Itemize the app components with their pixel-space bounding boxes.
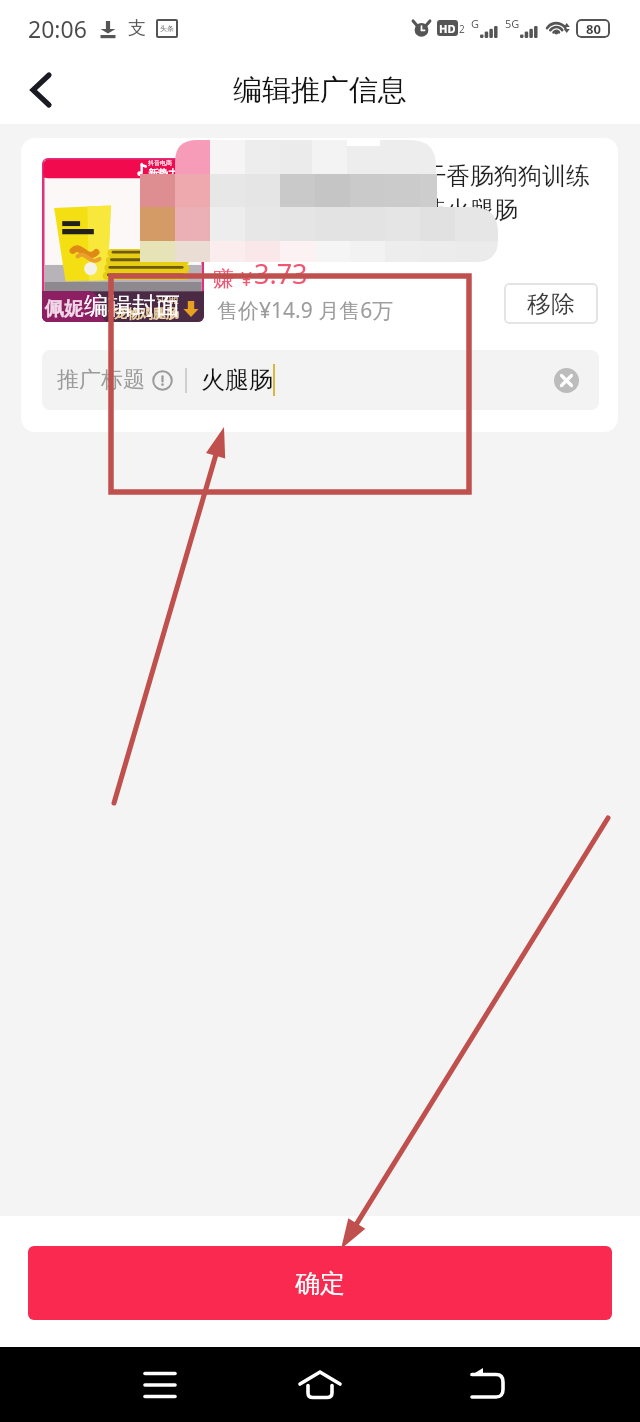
staticText: 2 (459, 22, 465, 36)
staticText: 火腿肠 (201, 365, 273, 395)
button[interactable]: Recent apps (130, 1355, 190, 1415)
staticText: 抖音电商 (148, 159, 172, 167)
staticText: 移除 (527, 289, 575, 319)
staticText: 支 (128, 17, 146, 40)
button[interactable]: Clear text (546, 360, 586, 400)
staticText: 新势力品牌 (148, 167, 198, 180)
button[interactable]: 抖音电商 (42, 158, 204, 322)
staticText: 3.73 (254, 255, 308, 292)
staticText: 宠物零食狗狗磨牙肉干香肠狗狗训练零食鸡肉味狗粮奖励装火腿肠 (206, 161, 605, 226)
staticText: ¥ (241, 266, 252, 292)
staticText: 售价¥14.9 月售6万 (217, 296, 394, 325)
button[interactable]: 推广标题 (42, 350, 599, 410)
staticText: 宠物鸡腿肠 (114, 305, 179, 321)
staticText: 确定 (295, 1268, 345, 1299)
staticText: G (471, 16, 480, 31)
staticText: 20:06 (28, 13, 87, 44)
staticText: 编辑推广信息 (233, 72, 407, 109)
button[interactable]: Back (457, 1355, 517, 1415)
staticText: HD (439, 21, 456, 36)
staticText: 80 (586, 20, 601, 38)
staticText: 推广标题 (57, 366, 145, 394)
button[interactable]: Back (14, 64, 66, 116)
staticText: 5G (505, 16, 520, 31)
button[interactable]: 确定 (28, 1246, 612, 1320)
staticText: 编辑封面 (84, 291, 180, 321)
button[interactable]: 移除 (504, 283, 598, 324)
staticText: 500根 (157, 294, 179, 305)
button[interactable]: Home (290, 1355, 350, 1415)
staticText: 头条 (160, 24, 174, 33)
staticText: 赚 (213, 266, 234, 292)
staticText: 佩妮 (45, 297, 83, 321)
